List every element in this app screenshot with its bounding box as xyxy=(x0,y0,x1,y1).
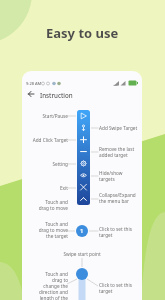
button[interactable]: 1 xyxy=(76,225,88,237)
button[interactable]: Swipe start point xyxy=(76,268,88,280)
staticText: Start/Pause xyxy=(24,113,68,119)
staticText: Swipe start point xyxy=(58,251,106,257)
button[interactable]: Back xyxy=(26,89,36,99)
staticText: Hide/show targets xyxy=(99,170,135,182)
staticText: Touch and drag to move the target xyxy=(36,221,68,239)
staticText: Exit xyxy=(24,185,68,191)
button[interactable]: Floating control bar xyxy=(77,110,90,205)
staticText: 9:28 AM xyxy=(26,81,42,86)
staticText: Setting xyxy=(24,161,68,167)
staticText: Touch and drag to move xyxy=(36,199,68,211)
staticText: Remove the last added target xyxy=(99,146,135,158)
staticText: 1 xyxy=(80,227,84,235)
staticText: Collapse/Expand the menu bar xyxy=(99,192,137,204)
staticText: Add Click Target xyxy=(24,137,68,143)
staticText: Click to set this target xyxy=(99,226,135,238)
staticText: Instruction xyxy=(40,91,73,99)
staticText: Add Swipe Target xyxy=(99,125,142,131)
staticText: Click to set this target xyxy=(99,282,135,294)
staticText: Easy to use xyxy=(46,24,119,42)
staticText: Touch and drag to change the direction a… xyxy=(36,271,68,300)
